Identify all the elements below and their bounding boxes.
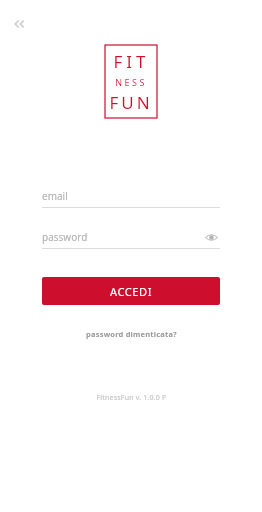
staticText: password: [42, 230, 202, 244]
button[interactable]: password dimenticata?: [76, 325, 187, 343]
button[interactable]: ACCEDI: [42, 277, 220, 305]
button[interactable]: email: [42, 185, 220, 208]
staticText: NESS: [115, 76, 147, 88]
button[interactable]: Back: [6, 10, 34, 38]
staticText: email: [42, 189, 220, 203]
staticText: password dimenticata?: [86, 329, 177, 339]
staticText: FitnessFun v. 1.0.0 P: [96, 393, 167, 403]
button[interactable]: password: [42, 226, 220, 249]
staticText: FUN: [109, 91, 153, 114]
staticText: FIT: [113, 50, 150, 73]
button[interactable]: Show password: [202, 228, 220, 246]
staticText: ACCEDI: [110, 284, 152, 299]
